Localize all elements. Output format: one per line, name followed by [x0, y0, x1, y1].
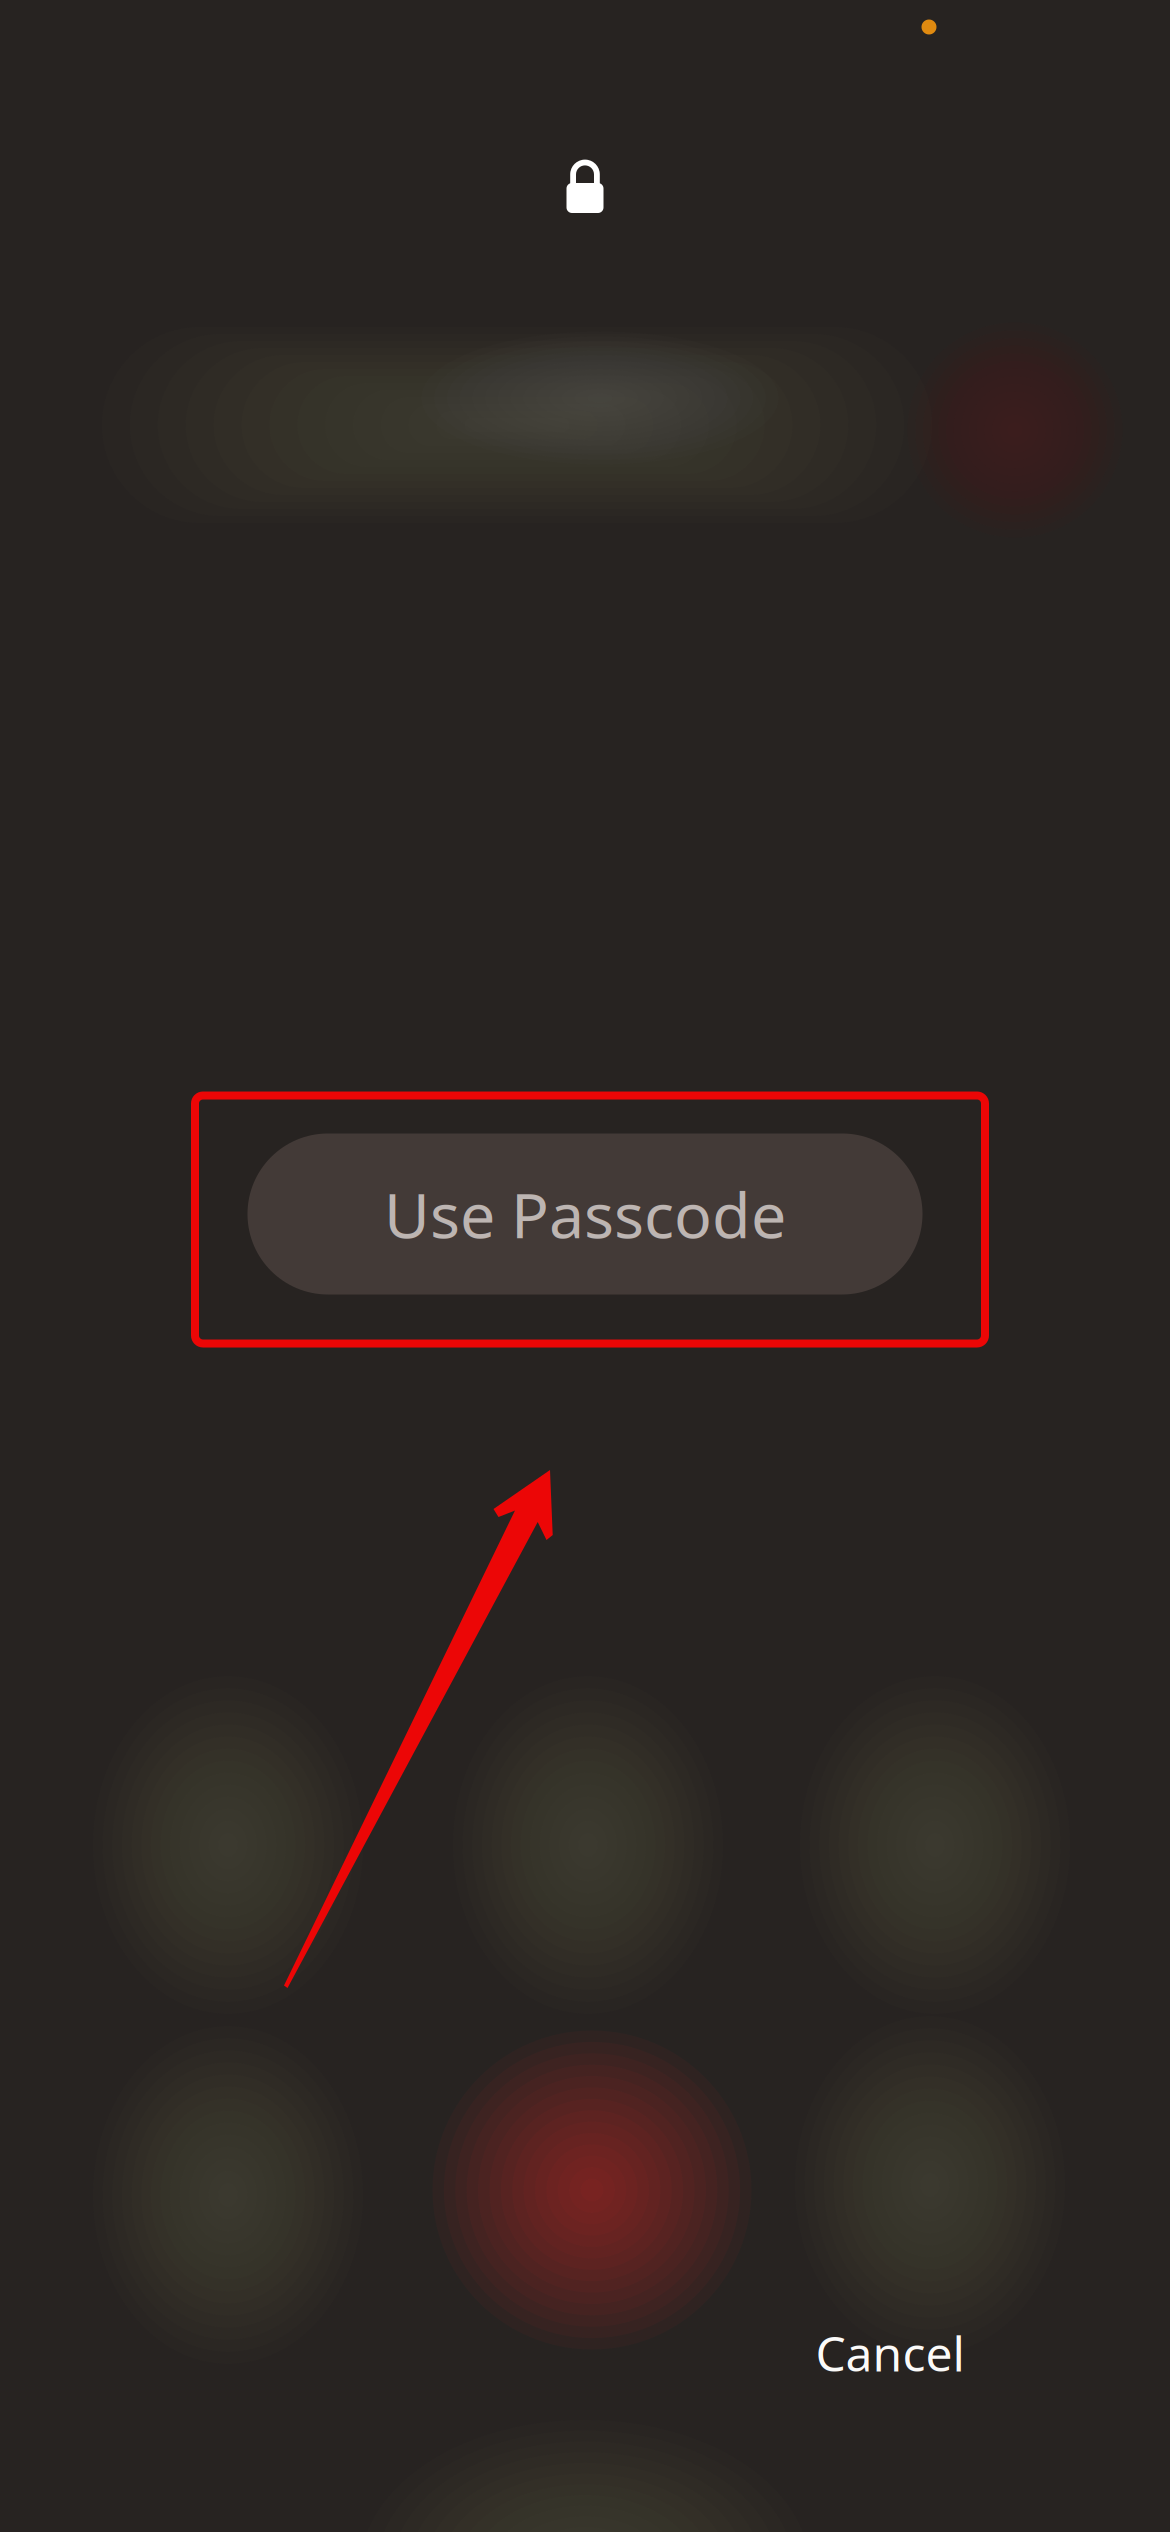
staticText: Use Passcode	[384, 1172, 786, 1256]
button[interactable]: Cancel	[790, 2308, 990, 2398]
staticText: Cancel	[815, 2321, 964, 2385]
button[interactable]: Use Passcode	[247, 1133, 922, 1294]
